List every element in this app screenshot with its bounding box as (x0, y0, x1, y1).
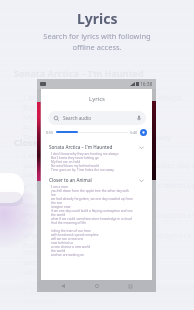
staticText: I am a man (23, 150, 63, 160)
staticText: Lyrics (89, 95, 105, 103)
staticText: the world (23, 220, 57, 230)
staticText: Time goes on by. Time hides the sun away (51, 168, 114, 172)
staticText: now behind us (23, 277, 75, 287)
staticText: Closer to an Animal (14, 136, 102, 148)
staticText: a new chance a new world (23, 287, 116, 297)
staticText: riding the train of our time (51, 229, 91, 233)
staticText: find the meaning of life (51, 221, 86, 225)
staticText: My feet are on hold (23, 112, 92, 122)
staticText: a new chance a new world (51, 245, 91, 249)
staticText: Sonata Arctica – I'm Haunted (49, 144, 113, 150)
staticText: Time goes on by. Time hides the sun away (23, 132, 172, 142)
staticText: 0:55 (46, 130, 54, 135)
button[interactable]: Home (89, 281, 105, 291)
staticText: 5:40 (130, 130, 138, 135)
staticText: I am a man (51, 185, 68, 189)
staticText: now behind us (51, 241, 73, 245)
staticText: will we see a new one (23, 267, 99, 277)
staticText: Search audio (63, 115, 91, 121)
button[interactable]: Search audio (48, 111, 146, 125)
staticText: riding the train of our time (23, 247, 117, 257)
staticText: Sonata Arctica – I'm Haunted (14, 67, 144, 79)
staticText: we had already forgotten, we one day cra… (23, 180, 194, 190)
staticText: Closer to an Animal (49, 177, 92, 183)
staticText: with breakneck speed, complete (23, 257, 137, 267)
staticText: we had already forgotten, we one day cra… (51, 197, 133, 201)
button[interactable]: Closer to an Animal (41, 177, 152, 257)
staticText: imagine now (51, 205, 71, 209)
staticText: if we one day could build a flaying cont… (23, 210, 194, 220)
button[interactable]: Sonata Arctica – I'm Haunted (41, 144, 152, 172)
staticText: what if we could somehow store knowledge… (51, 217, 132, 221)
staticText: No wind blows my behind world (51, 164, 100, 168)
staticText: I don't know why they are hunting me alw… (23, 92, 182, 102)
staticText: But I know they never letting go (23, 102, 136, 112)
button[interactable]: Back (55, 281, 71, 291)
staticText: I don't know why they are hunting me alw… (51, 152, 119, 156)
staticText: if we one day could build a flaying cont… (51, 209, 133, 213)
staticText: My feet are on hold (51, 160, 81, 164)
staticText: with breakneck speed complete (51, 233, 99, 237)
staticText: me (51, 193, 56, 197)
staticText: will we see a new one (51, 237, 84, 241)
staticText: the world (51, 249, 66, 253)
staticText: 16:38 (140, 81, 153, 88)
staticText: Lyrics (77, 9, 118, 28)
staticText: But I know they never letting go (51, 156, 99, 160)
staticText: and we are waiting on (51, 253, 85, 257)
staticText: Search for lyrics with following offline… (43, 31, 151, 52)
staticText: you fell down from the apple tree the ot… (51, 189, 130, 193)
staticText: imagine now (23, 200, 69, 210)
staticText: the sea (51, 201, 62, 205)
staticText: what if we could somehow store knowledge… (23, 230, 194, 240)
staticText: No wind blows my behind world (23, 122, 137, 132)
staticText: the world (51, 213, 66, 217)
staticText: you fell down from the apple tree the ot… (23, 160, 194, 170)
staticText: find the meaning of life (23, 240, 106, 250)
staticText: the sea (23, 190, 49, 200)
button[interactable]: Recents (122, 281, 138, 291)
button[interactable]: Play (140, 129, 147, 136)
